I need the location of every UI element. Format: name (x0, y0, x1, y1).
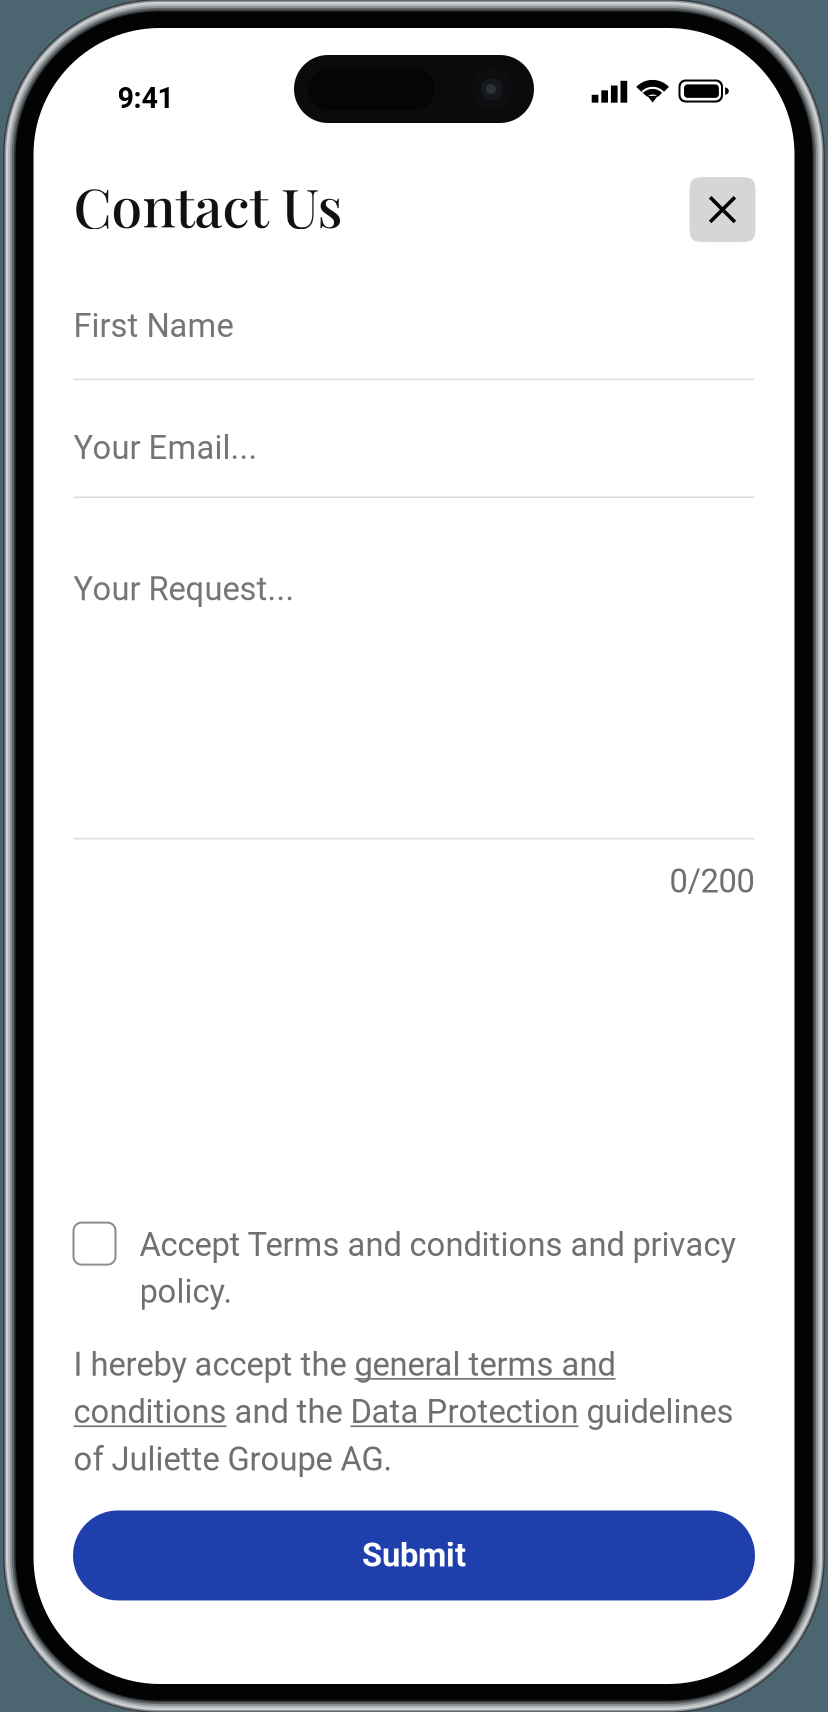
staticText: Accept Terms and conditions and privacy … (139, 1226, 735, 1311)
button[interactable]: Close (689, 177, 755, 242)
staticText: I hereby accept the general terms and co… (73, 1345, 733, 1478)
staticText: Contact Us (73, 169, 342, 242)
button[interactable]: Submit (73, 1510, 755, 1600)
staticText: Your Email... (73, 429, 257, 467)
staticText: Submit (362, 1536, 466, 1575)
staticText: Your Request... (73, 570, 294, 608)
staticText: 0/200 (669, 862, 754, 900)
button[interactable]: Accept Terms and conditions and privacy … (73, 1226, 754, 1311)
staticText: First Name (73, 307, 233, 345)
staticText: 9:41 (117, 81, 173, 115)
